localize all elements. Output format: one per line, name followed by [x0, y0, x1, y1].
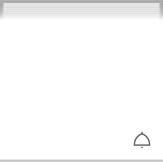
button[interactable]: Notifications [129, 127, 155, 153]
